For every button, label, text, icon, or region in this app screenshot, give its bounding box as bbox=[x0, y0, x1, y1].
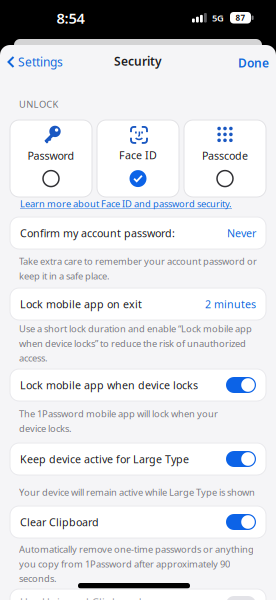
staticText: seconds. bbox=[19, 572, 57, 585]
button[interactable]: Done bbox=[238, 55, 269, 71]
staticText: keep it in a safe place. bbox=[19, 270, 110, 282]
staticText: Face ID bbox=[119, 148, 157, 162]
staticText: access. bbox=[19, 352, 48, 364]
staticText: Passcode bbox=[202, 148, 248, 163]
button[interactable]: Clear Clipboard bbox=[10, 506, 266, 538]
button[interactable]: Lock mobile app on exit bbox=[10, 288, 266, 320]
button[interactable]: Lock mobile app when device locks bbox=[10, 369, 266, 401]
staticText: Clear Clipboard bbox=[20, 515, 99, 529]
staticText: 87 bbox=[235, 12, 245, 23]
staticText: Confirm my account password: bbox=[20, 226, 175, 240]
staticText: Automatically remove one-time passwords … bbox=[19, 543, 254, 555]
button[interactable]: Learn more about Face ID and password se… bbox=[20, 197, 232, 210]
staticText: Your device will remain active while Lar… bbox=[19, 486, 255, 498]
button[interactable]: Password bbox=[10, 120, 92, 197]
staticText: Lock mobile app when device locks bbox=[20, 378, 198, 392]
staticText: UNLOCK bbox=[19, 98, 58, 110]
staticText: Keep device active for Large Type bbox=[20, 452, 189, 466]
staticText: Lock mobile app on exit bbox=[20, 297, 142, 311]
staticText: Security bbox=[114, 53, 162, 69]
staticText: when device locks” to reduce the risk of… bbox=[19, 337, 246, 349]
button[interactable]: Passcode bbox=[184, 120, 266, 197]
staticText: 2 minutes bbox=[205, 297, 256, 311]
staticText: Use a short lock duration and enable “Lo… bbox=[19, 322, 252, 335]
staticText: The 1Password mobile app will lock when … bbox=[19, 407, 218, 420]
staticText: device locks. bbox=[19, 422, 72, 434]
button[interactable]: Face ID bbox=[97, 120, 179, 197]
button[interactable]: Settings bbox=[7, 54, 63, 70]
staticText: Settings bbox=[18, 54, 63, 70]
staticText: Learn more about Face ID and password se… bbox=[20, 197, 232, 210]
button[interactable]: Confirm my account password: bbox=[10, 217, 266, 249]
staticText: 5G bbox=[212, 12, 224, 24]
staticText: Password bbox=[27, 148, 74, 163]
staticText: Done bbox=[238, 55, 269, 71]
staticText: you copy from 1Password after approximat… bbox=[19, 558, 230, 570]
staticText: 8:54 bbox=[56, 8, 84, 28]
staticText: Take extra care to remember your account… bbox=[19, 255, 257, 267]
button[interactable]: Keep device active for Large Type bbox=[10, 443, 266, 475]
staticText: Use Universal Clipboard bbox=[20, 595, 142, 600]
button[interactable]: Use Universal Clipboard bbox=[10, 589, 266, 600]
staticText: Never bbox=[227, 226, 256, 240]
